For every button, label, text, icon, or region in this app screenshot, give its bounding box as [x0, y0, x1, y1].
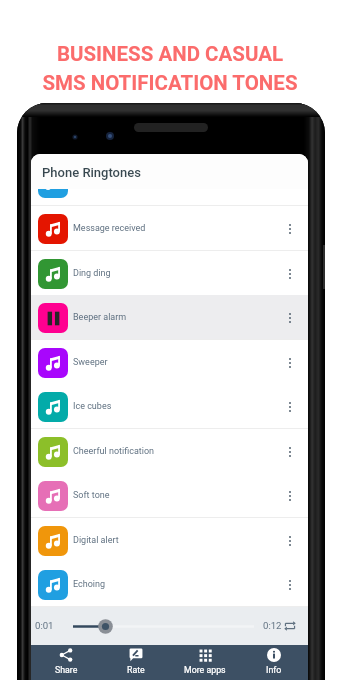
staticText: Ice cubes: [73, 401, 112, 412]
button[interactable]: More options: [283, 356, 297, 370]
staticText: Echoing: [73, 579, 106, 590]
staticText: Soft tone: [73, 490, 110, 501]
button[interactable]: More options: [283, 222, 297, 236]
button[interactable]: More options: [283, 445, 297, 459]
button[interactable]: Repeat: [284, 620, 296, 632]
button[interactable]: Beeper alarm: [31, 295, 308, 340]
staticText: Ding ding: [73, 268, 111, 279]
button[interactable]: More apps: [170, 645, 239, 680]
staticText: BUSINESS AND CASUAL SMS NOTIFICATION TON…: [0, 42, 340, 95]
button[interactable]: Message received: [31, 206, 308, 251]
button[interactable]: Seek: [73, 617, 254, 636]
button[interactable]: Soft tone: [31, 473, 308, 518]
button[interactable]: More options: [283, 578, 297, 592]
button[interactable]: More options: [283, 400, 297, 414]
staticText: Digital alert: [73, 535, 119, 546]
staticText: Phone Ringtones: [42, 165, 141, 180]
button[interactable]: Sweeper: [31, 340, 308, 385]
button[interactable]: [31, 189, 308, 206]
button[interactable]: Rate: [101, 645, 170, 680]
button[interactable]: Ice cubes: [31, 384, 308, 429]
staticText: Share: [55, 665, 78, 675]
staticText: 0:01: [35, 620, 54, 631]
button[interactable]: Echoing: [31, 562, 308, 607]
button[interactable]: Info: [239, 645, 308, 680]
staticText: Info: [266, 665, 282, 675]
staticText: 0:12: [263, 620, 282, 631]
button[interactable]: More options: [283, 489, 297, 503]
staticText: Sweeper: [73, 357, 108, 368]
button[interactable]: More options: [283, 267, 297, 281]
staticText: Rate: [127, 665, 145, 675]
button[interactable]: Share: [31, 645, 101, 680]
staticText: More apps: [184, 665, 226, 675]
button[interactable]: Ding ding: [31, 251, 308, 296]
button[interactable]: Cheerful notification: [31, 429, 308, 474]
staticText: Beeper alarm: [73, 312, 127, 323]
staticText: Message received: [73, 223, 146, 234]
button[interactable]: More options: [283, 534, 297, 548]
button[interactable]: Digital alert: [31, 518, 308, 563]
button[interactable]: More options: [283, 311, 297, 325]
staticText: Cheerful notification: [73, 446, 155, 457]
